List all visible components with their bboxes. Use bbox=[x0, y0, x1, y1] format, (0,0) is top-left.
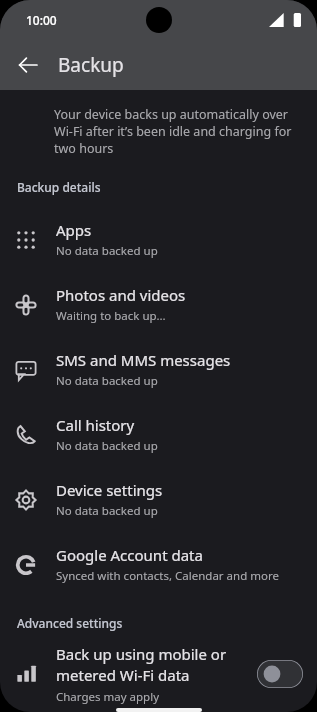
button[interactable]: Back bbox=[8, 45, 48, 85]
button[interactable]: Google Account data bbox=[0, 532, 317, 597]
staticText: Synced with contacts, Calendar and more bbox=[56, 568, 279, 584]
staticText: Waiting to back up… bbox=[56, 308, 166, 324]
staticText: 10:00 bbox=[26, 12, 57, 28]
button[interactable]: Photos and videos bbox=[0, 272, 317, 337]
staticText: Apps bbox=[56, 220, 92, 240]
staticText: Backup bbox=[58, 52, 124, 78]
staticText: No data backed up bbox=[56, 438, 158, 454]
staticText: Backup details bbox=[17, 179, 101, 195]
staticText: Your device backs up automatically over … bbox=[54, 106, 293, 157]
staticText: Photos and videos bbox=[56, 285, 186, 305]
staticText: Device settings bbox=[56, 480, 163, 500]
staticText: Google Account data bbox=[56, 545, 203, 565]
button[interactable]: Call history bbox=[0, 402, 317, 467]
staticText: Call history bbox=[56, 415, 135, 435]
button[interactable]: Back up using mobile data toggle bbox=[257, 660, 303, 688]
staticText: Back up using mobile or metered Wi-Fi da… bbox=[56, 644, 249, 686]
staticText: Charges may apply bbox=[56, 689, 160, 705]
staticText: SMS and MMS messages bbox=[56, 350, 231, 370]
button[interactable]: Device settings bbox=[0, 467, 317, 532]
staticText: No data backed up bbox=[56, 373, 158, 389]
button[interactable]: Back up using mobile or metered Wi-Fi da… bbox=[0, 641, 317, 707]
button[interactable]: Apps bbox=[0, 207, 317, 272]
staticText: No data backed up bbox=[56, 503, 158, 519]
staticText: Advanced settings bbox=[17, 615, 123, 631]
button[interactable]: SMS and MMS messages bbox=[0, 337, 317, 402]
staticText: No data backed up bbox=[56, 243, 158, 259]
